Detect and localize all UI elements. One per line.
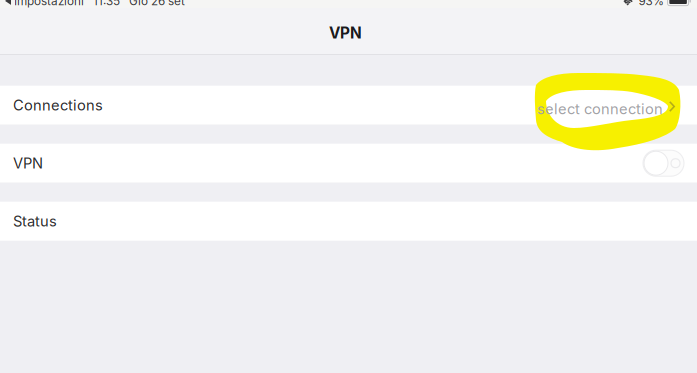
- staticText: VPN: [13, 154, 43, 172]
- button[interactable]: Connections: [0, 86, 697, 125]
- staticText: Connections: [13, 96, 103, 114]
- staticText: Impostazioni: [14, 0, 84, 8]
- staticText: 93%: [639, 0, 665, 8]
- staticText: Status: [13, 212, 57, 230]
- staticText: VPN: [329, 24, 362, 42]
- button[interactable]: Impostazioni: [0, 0, 88, 8]
- button[interactable]: VPN: [643, 150, 684, 176]
- staticText: select connection: [537, 100, 663, 118]
- staticText: select connection: [535, 96, 661, 114]
- button[interactable]: Status: [0, 202, 697, 241]
- staticText: Gio 26 set: [129, 0, 185, 8]
- staticText: 11:35: [93, 0, 120, 8]
